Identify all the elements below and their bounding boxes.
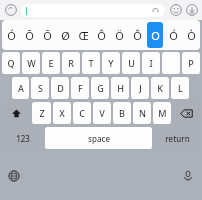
button[interactable]: C [73, 102, 91, 124]
staticText: F [78, 82, 83, 94]
button[interactable]: Z [32, 102, 51, 124]
staticText: C [79, 107, 85, 119]
staticText: E [48, 57, 54, 69]
button[interactable]: V [93, 102, 111, 124]
button[interactable] [21, 4, 165, 17]
staticText: U [128, 57, 135, 69]
staticText: L [178, 82, 183, 94]
staticText: Ó [7, 28, 16, 43]
staticText: space [88, 133, 110, 144]
staticText: Ø [61, 28, 70, 43]
staticText: 123 [16, 133, 30, 144]
button[interactable]: Ò [183, 22, 199, 48]
staticText: N [139, 107, 146, 119]
button[interactable]: Ô [93, 22, 109, 48]
staticText: J [139, 82, 142, 94]
staticText: Ō [25, 28, 34, 43]
staticText: Ó [169, 28, 178, 43]
staticText: Ò [187, 28, 196, 43]
staticText: X [59, 107, 65, 119]
staticText: Z [39, 107, 45, 119]
button[interactable]: F [71, 77, 89, 99]
button[interactable]: Q [2, 52, 20, 74]
staticText: Ô [97, 28, 106, 43]
button[interactable]: Ó [165, 22, 181, 48]
button[interactable]: Ō [21, 22, 37, 48]
staticText: G [97, 82, 104, 94]
button[interactable]: X [53, 102, 71, 124]
staticText: Ô [133, 28, 142, 43]
staticText: Y [108, 57, 114, 69]
staticText: T [88, 57, 94, 69]
button[interactable]: L [171, 77, 189, 99]
staticText: R [68, 57, 74, 69]
staticText: K [157, 82, 163, 94]
button[interactable]: Camera [4, 3, 18, 17]
button[interactable]: I [142, 52, 160, 74]
staticText: W [27, 57, 36, 69]
staticText: O [151, 28, 160, 43]
staticText: B [119, 107, 125, 119]
button[interactable]: R [62, 52, 80, 74]
button[interactable]: N [133, 102, 151, 124]
staticText: M [158, 107, 167, 119]
staticText: V [99, 107, 105, 119]
button[interactable]: D [51, 77, 69, 99]
button[interactable]: Ö [111, 22, 127, 48]
button[interactable]: A [12, 77, 29, 99]
button[interactable]: Œ [75, 22, 91, 48]
staticText: Q [7, 57, 15, 69]
button[interactable]: O [147, 22, 163, 48]
button[interactable]: Shift [2, 102, 30, 124]
staticText: D [57, 82, 64, 94]
button[interactable]: G [91, 77, 109, 99]
button[interactable]: E [42, 52, 60, 74]
button[interactable]: Dictation [176, 164, 200, 188]
button[interactable]: Ó [3, 22, 19, 48]
staticText: Ö [115, 28, 124, 43]
button[interactable]: 123 [2, 127, 43, 149]
staticText: I [149, 57, 153, 69]
button[interactable]: U [122, 52, 140, 74]
button[interactable]: Ô [129, 22, 145, 48]
staticText: P [188, 57, 194, 69]
button[interactable]: Y [102, 52, 120, 74]
button[interactable]: return [154, 127, 200, 149]
button[interactable]: space [45, 127, 152, 149]
button[interactable]: Backspace [173, 102, 200, 124]
button[interactable]: T [82, 52, 100, 74]
button[interactable]: M [153, 102, 171, 124]
button[interactable]: W [22, 52, 40, 74]
button[interactable]: Ø [57, 22, 73, 48]
staticText: A [18, 82, 24, 94]
staticText: H [117, 82, 124, 94]
button[interactable]: J [131, 77, 149, 99]
button[interactable]: Õ [39, 22, 55, 48]
button[interactable]: P [182, 52, 200, 74]
button[interactable]: K [151, 77, 169, 99]
button[interactable]: S [31, 77, 49, 99]
staticText: Õ [43, 28, 52, 43]
button[interactable]: Send [185, 3, 199, 17]
button[interactable]: B [113, 102, 131, 124]
button[interactable]: H [111, 77, 129, 99]
staticText: Œ [78, 28, 89, 43]
button[interactable]: Emoji [169, 3, 183, 17]
button[interactable] [162, 52, 180, 74]
staticText: S [38, 82, 43, 94]
button[interactable]: Change keyboard [2, 164, 26, 188]
staticText: return [165, 133, 190, 144]
